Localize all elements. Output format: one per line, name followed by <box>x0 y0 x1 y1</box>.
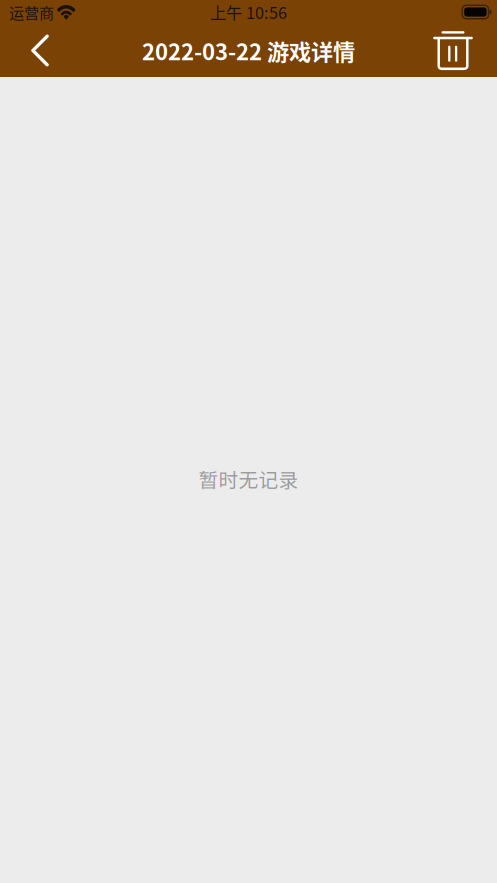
button[interactable]: 返回 <box>8 25 63 75</box>
staticText: 上午 10:56 <box>210 0 287 24</box>
staticText: 运营商 <box>9 1 54 23</box>
button[interactable]: 删除 <box>427 25 490 75</box>
staticText: 暂时无记录 <box>198 465 298 493</box>
staticText: 2022-03-22 游戏详情 <box>142 34 355 66</box>
